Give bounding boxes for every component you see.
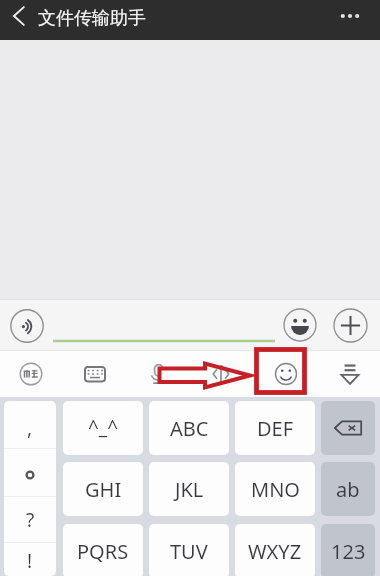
staticText: WXYZ [248,538,302,565]
staticText: MNO [251,476,300,503]
button[interactable]: ABC [149,401,229,455]
button[interactable]: Keyboard [76,351,114,397]
staticText: PQRS [77,538,129,565]
staticText: ! [27,548,33,574]
staticText: ^_^ [88,414,119,440]
staticText: DEF [257,415,294,442]
button[interactable]: More options [328,0,372,32]
button[interactable]: Backspace [321,401,375,455]
button[interactable]: Back [0,0,38,32]
staticText: GHI [85,476,122,503]
button[interactable]: MNO [235,462,315,516]
button[interactable]: PQRS [63,524,143,576]
button[interactable]: Input method [12,351,50,397]
button[interactable]: JKL [149,462,229,516]
button[interactable]: ab [321,462,375,516]
button[interactable]: Switch input [203,351,241,397]
staticText: , [27,415,33,441]
button[interactable]: Question mark [4,497,56,542]
button[interactable]: Voice input [10,309,44,343]
button[interactable]: Comma [4,401,56,448]
staticText: TUV [170,538,208,565]
button[interactable]: WXYZ [235,524,315,576]
button[interactable]: TUV [149,524,229,576]
button[interactable]: ^_^ [63,401,143,455]
staticText: 文件传输助手 [38,7,146,30]
button[interactable]: Exclamation mark [4,543,56,576]
staticText: ABC [170,415,209,442]
button[interactable]: More functions [333,308,368,343]
button[interactable]: Emoji [267,351,305,397]
staticText: ? [26,507,35,533]
button[interactable]: Hide keyboard [331,351,369,397]
button[interactable] [50,304,280,346]
button[interactable]: DEF [235,401,315,455]
button[interactable]: GHI [63,462,143,516]
button[interactable]: 123 [321,524,375,576]
staticText: ab [336,476,360,503]
button[interactable]: Emoji [283,308,317,342]
button[interactable]: Degree [4,449,56,496]
staticText: JKL [175,476,204,503]
staticText: 123 [331,538,366,565]
button[interactable]: Voice [140,351,178,397]
